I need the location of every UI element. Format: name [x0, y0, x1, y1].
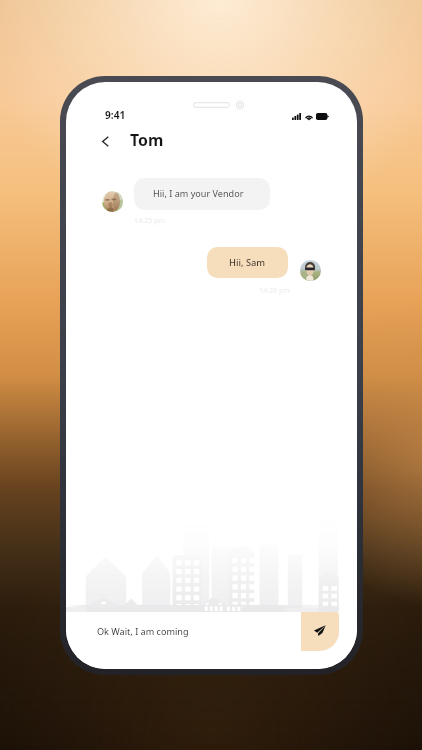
staticText: Hii, Sam [229, 256, 266, 269]
staticText: Tom [130, 129, 164, 151]
staticText: 9:41 [105, 108, 126, 122]
button[interactable]: Back [94, 130, 116, 152]
button[interactable]: Hii, Sam [207, 247, 288, 278]
staticText: Hii, I am your Vendor [153, 187, 244, 199]
button[interactable]: Send [301, 612, 339, 651]
staticText: 14:28 pm [259, 285, 290, 295]
button[interactable]: Hii, I am your Vendor [134, 178, 270, 210]
staticText: Ok Wait, I am coming [97, 625, 189, 637]
staticText: 14:25 pm [134, 215, 165, 225]
